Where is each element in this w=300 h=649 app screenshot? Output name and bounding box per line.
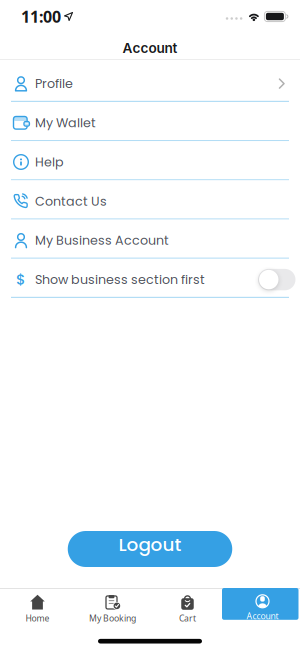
button[interactable]: My Booking [75,589,150,623]
button[interactable]: Contact Us [0,180,300,220]
staticText: Account [122,40,177,56]
button[interactable]: My Wallet [0,102,300,141]
staticText: Account [246,610,278,622]
staticText: Help [35,153,64,171]
staticText: My Wallet [35,114,96,132]
staticText: My Business Account [35,231,169,249]
staticText: Cart [179,612,196,624]
button[interactable] [258,269,295,290]
staticText: Show business section first [35,271,205,288]
staticText: Home [25,612,49,624]
staticText: $ [16,269,26,290]
button[interactable]: $ [0,259,300,298]
button[interactable]: Home [0,589,75,623]
button[interactable]: Logout [68,531,232,567]
button[interactable]: Account [225,589,300,623]
staticText: Logout [118,532,181,557]
staticText: Profile [35,75,73,92]
button[interactable]: Help [0,141,300,180]
staticText: Contact Us [35,192,107,210]
staticText: My Booking [89,612,136,624]
button[interactable]: Profile [0,63,300,102]
button[interactable]: My Business Account [0,220,300,259]
staticText: 11:00 [21,6,61,27]
button[interactable]: Cart [150,589,225,623]
